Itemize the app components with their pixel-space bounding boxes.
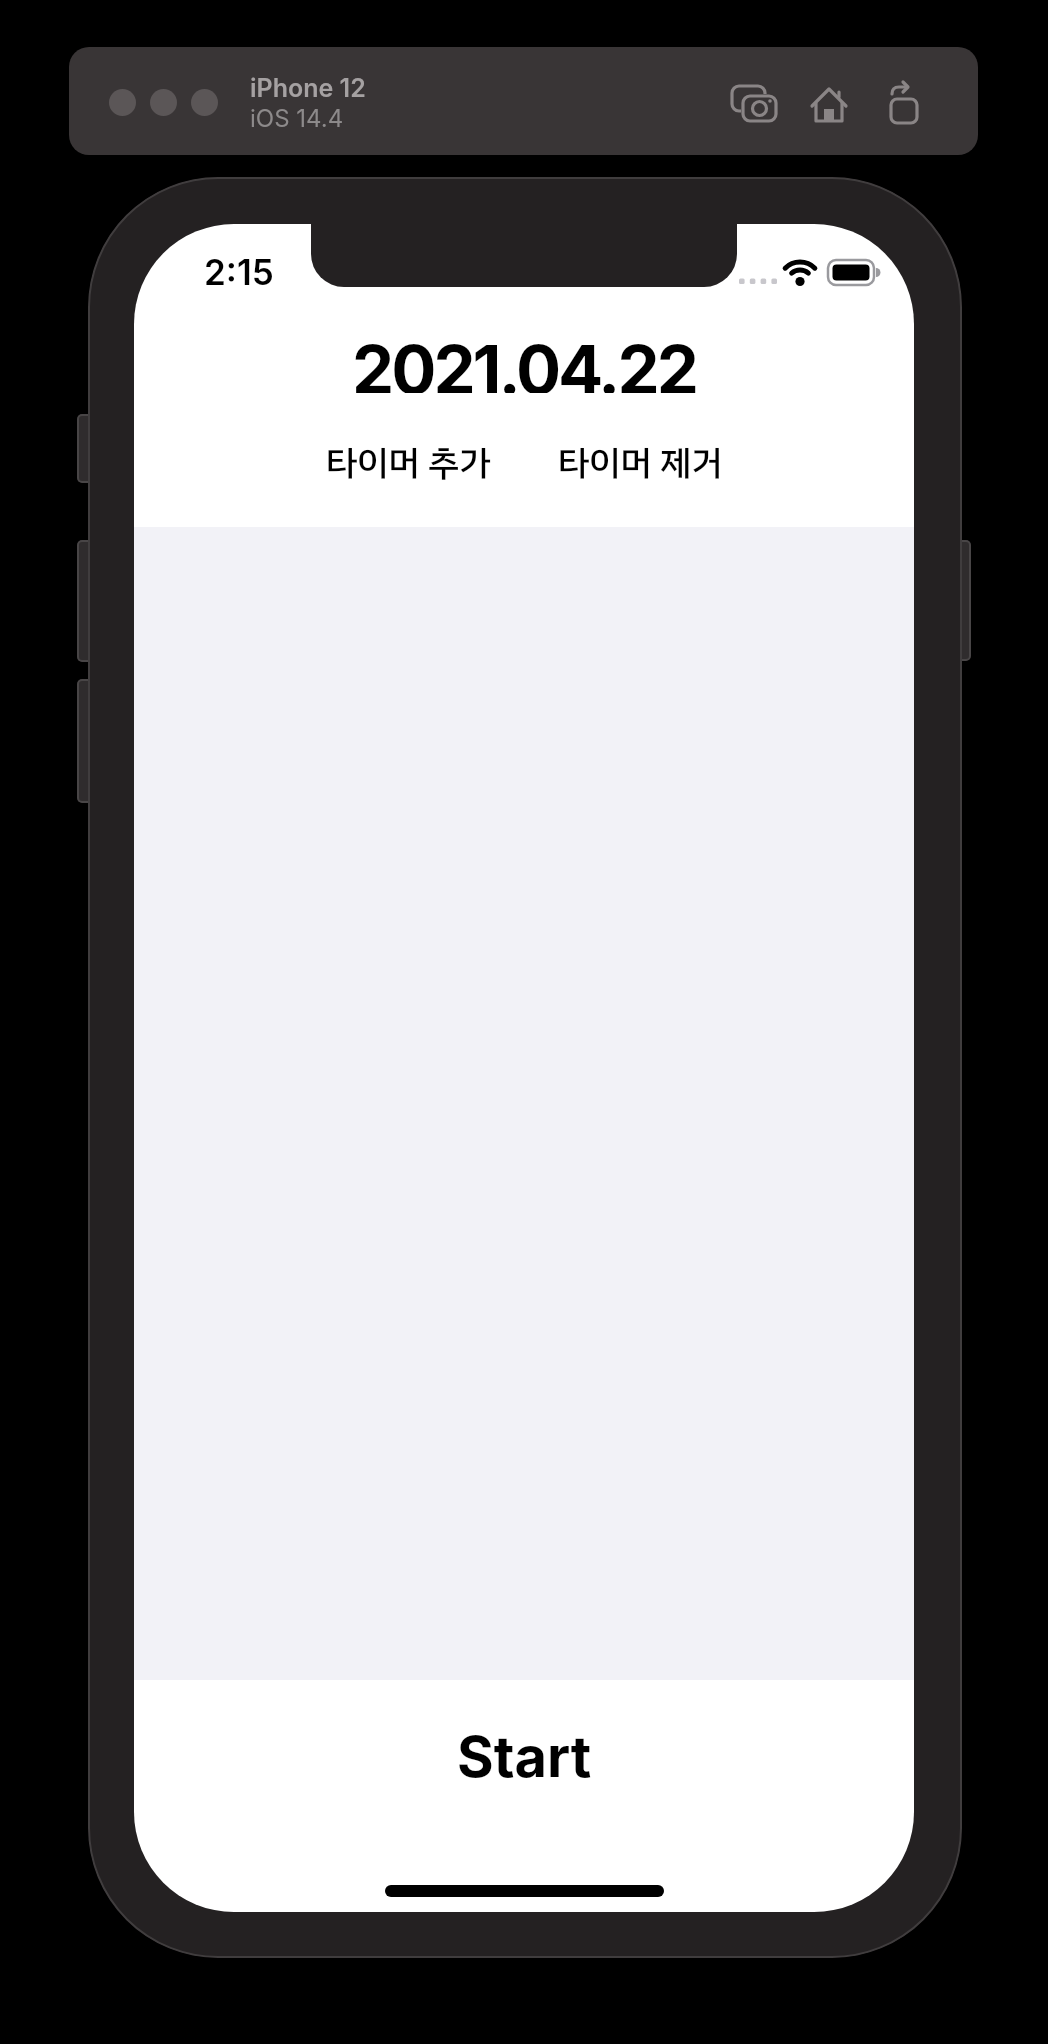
staticText: iPhone 12 (250, 73, 366, 103)
staticText: Start (457, 1723, 592, 1783)
staticText: 2:15 (204, 251, 274, 293)
button[interactable]: 타이머 제거 (530, 437, 750, 487)
button[interactable] (810, 85, 854, 125)
button[interactable]: 타이머 추가 (298, 437, 518, 487)
staticText: 2021.04.22 (352, 329, 696, 393)
button[interactable] (885, 85, 929, 125)
staticText: 타이머 제거 (558, 437, 723, 487)
staticText: 타이머 추가 (326, 437, 491, 487)
button[interactable]: Start (457, 1723, 592, 1783)
staticText: iOS 14.4 (250, 104, 344, 133)
button[interactable] (732, 85, 782, 125)
